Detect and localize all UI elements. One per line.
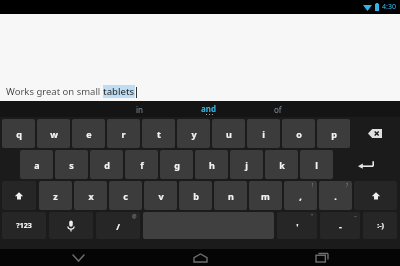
button[interactable]: i: [247, 119, 280, 148]
staticText: ~: [354, 213, 357, 220]
staticText: q: [16, 128, 22, 140]
button[interactable]: Recents: [289, 249, 355, 266]
staticText: ?: [346, 182, 349, 189]
staticText: ': [296, 220, 299, 232]
staticText: w: [50, 128, 58, 140]
button[interactable]: g: [160, 150, 193, 179]
button[interactable]: q: [2, 119, 35, 148]
staticText: k: [279, 159, 285, 171]
staticText: n: [228, 190, 234, 202]
staticText: b: [193, 190, 199, 202]
button[interactable]: m: [249, 181, 282, 210]
button[interactable]: j: [230, 150, 263, 179]
staticText: ,: [299, 190, 302, 202]
staticText: i: [262, 128, 265, 140]
button[interactable]: b: [179, 181, 212, 210]
button[interactable]: -: [320, 212, 360, 239]
staticText: in: [136, 104, 144, 115]
staticText: v: [158, 190, 164, 202]
staticText: ": [311, 213, 314, 220]
staticText: r: [121, 128, 126, 140]
button[interactable]: w: [37, 119, 70, 148]
button[interactable]: :-): [363, 212, 397, 239]
staticText: l: [315, 159, 318, 171]
staticText: 4:30: [382, 2, 396, 12]
button[interactable]: c: [109, 181, 142, 210]
staticText: c: [123, 190, 128, 202]
staticText: !: [312, 182, 314, 189]
staticText: y: [191, 128, 197, 140]
staticText: t: [157, 128, 161, 140]
staticText: o: [296, 128, 302, 140]
button[interactable]: ,: [284, 181, 317, 210]
button[interactable]: n: [214, 181, 247, 210]
staticText: j: [245, 159, 248, 171]
button[interactable]: z: [39, 181, 72, 210]
button[interactable]: t: [142, 119, 175, 148]
button[interactable]: Hide keyboard: [45, 249, 111, 266]
button[interactable]: /: [96, 212, 140, 239]
staticText: m: [261, 190, 270, 202]
button[interactable]: u: [212, 119, 245, 148]
staticText: and: [201, 103, 217, 114]
button[interactable]: in: [105, 101, 175, 117]
button[interactable]: a: [20, 150, 53, 179]
button[interactable]: d: [90, 150, 123, 179]
staticText: /: [116, 220, 120, 232]
staticText: f: [140, 159, 144, 171]
button[interactable]: x: [74, 181, 107, 210]
button[interactable]: Works great on small: [6, 85, 400, 98]
button[interactable]: p: [317, 119, 350, 148]
staticText: @: [132, 213, 137, 220]
staticText: d: [104, 159, 110, 171]
button[interactable]: v: [144, 181, 177, 210]
button[interactable]: Shift: [354, 181, 397, 210]
staticText: x: [88, 190, 94, 202]
staticText: :-): [377, 221, 384, 231]
button[interactable]: k: [265, 150, 298, 179]
button[interactable]: Enter: [335, 150, 397, 179]
staticText: e: [86, 128, 92, 140]
button[interactable]: and: [175, 101, 243, 117]
button[interactable]: h: [195, 150, 228, 179]
button[interactable]: y: [177, 119, 210, 148]
staticText: h: [209, 159, 215, 171]
button[interactable]: Voice input: [49, 212, 93, 239]
button[interactable]: f: [125, 150, 158, 179]
button[interactable]: Home: [167, 249, 233, 266]
staticText: -: [339, 220, 342, 232]
staticText: tablets: [103, 85, 135, 98]
button[interactable]: ?123: [2, 212, 46, 239]
button[interactable]: e: [72, 119, 105, 148]
button[interactable]: ': [277, 212, 317, 239]
staticText: .: [334, 190, 337, 202]
staticText: ?123: [16, 221, 32, 231]
staticText: p: [331, 128, 337, 140]
button[interactable]: l: [300, 150, 333, 179]
staticText: z: [53, 190, 58, 202]
staticText: Works great on small: [6, 85, 103, 98]
staticText: s: [69, 159, 74, 171]
button[interactable]: r: [107, 119, 140, 148]
button[interactable]: of: [243, 101, 313, 117]
staticText: u: [226, 128, 232, 140]
staticText: of: [274, 104, 282, 115]
button[interactable]: s: [55, 150, 88, 179]
button[interactable]: Shift: [2, 181, 36, 210]
button[interactable]: Backspace: [352, 119, 397, 148]
button[interactable]: .: [319, 181, 352, 210]
button[interactable]: o: [282, 119, 315, 148]
staticText: a: [34, 159, 40, 171]
staticText: g: [174, 159, 180, 171]
